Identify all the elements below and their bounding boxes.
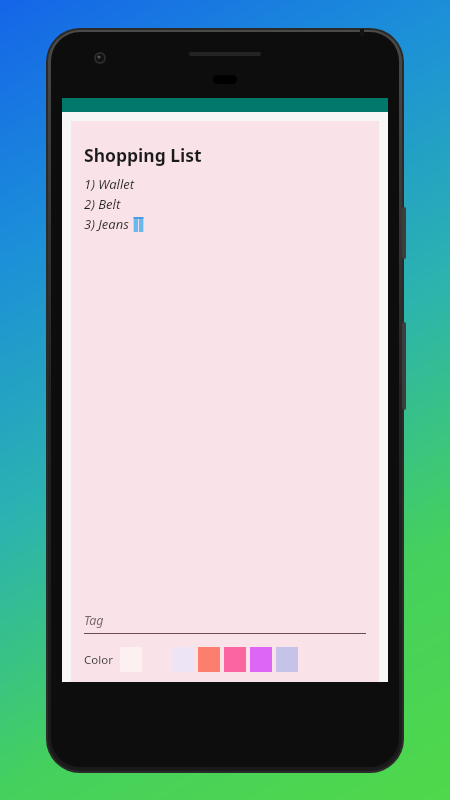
staticText: 3) Jeans	[84, 215, 133, 233]
staticText: 1) Wallet	[84, 175, 135, 193]
staticText: 2) Belt	[84, 195, 121, 213]
staticText: Color	[84, 652, 113, 668]
staticText: Tag	[84, 612, 104, 629]
staticText: Shopping List	[84, 143, 202, 167]
